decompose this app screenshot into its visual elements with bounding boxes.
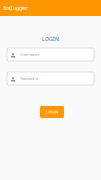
button[interactable]: LOGIN [40,106,64,118]
staticText: Username [20,52,39,57]
staticText: BotJuggler [3,4,28,12]
button[interactable]: Username [7,48,94,61]
staticText: Password [20,76,37,81]
staticText: LOGIN [42,35,59,43]
staticText: LOGIN [46,109,58,115]
button[interactable]: Password [7,72,94,85]
